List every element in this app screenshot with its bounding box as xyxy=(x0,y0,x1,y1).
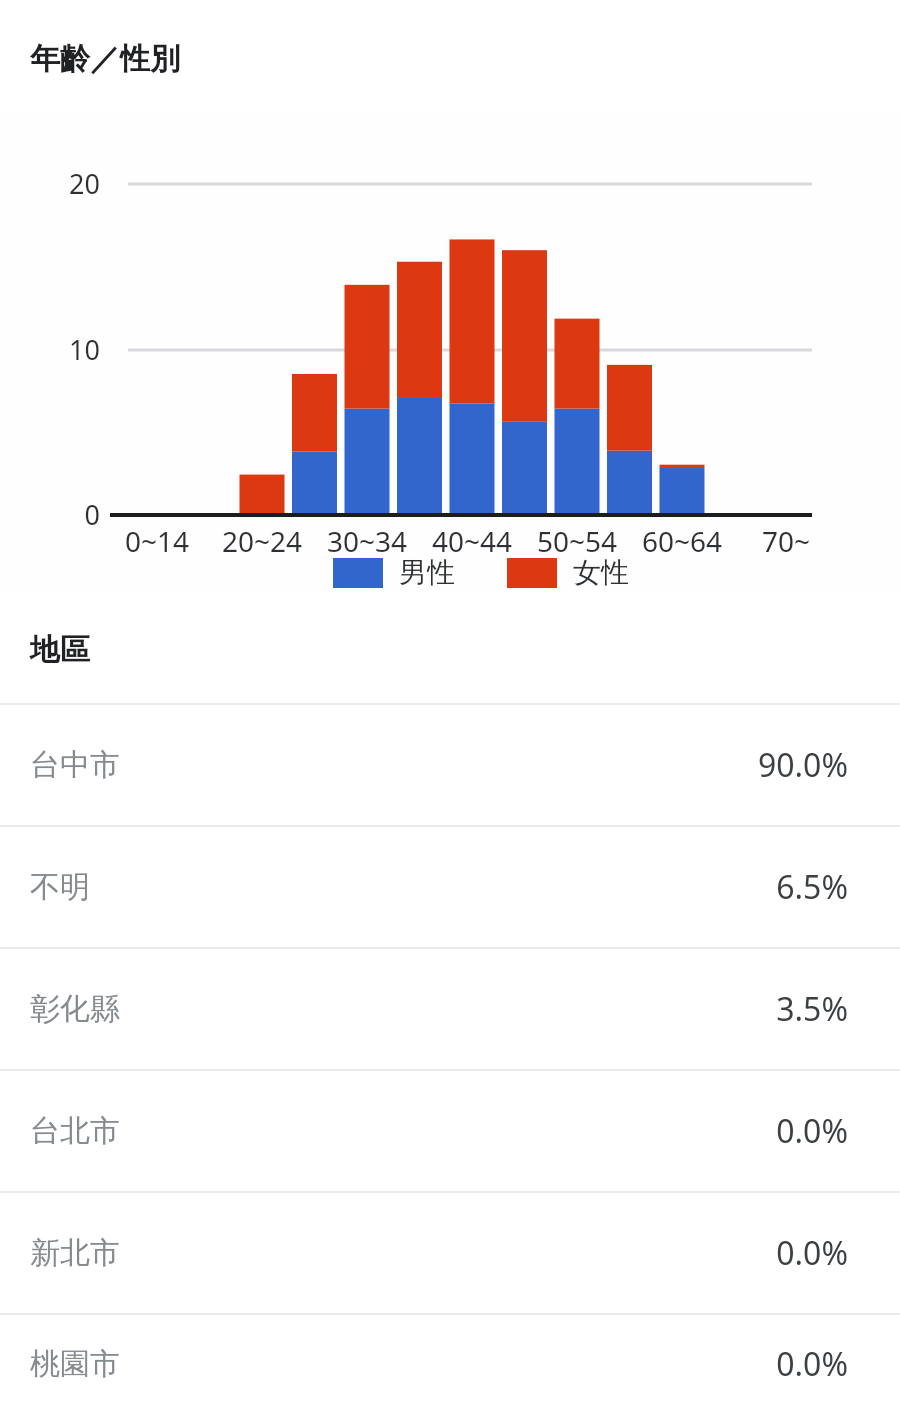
staticText: 男性 xyxy=(399,555,455,590)
button[interactable]: 新北市 xyxy=(0,1193,900,1313)
button[interactable]: 不明 xyxy=(0,827,900,947)
staticText: 桃園市 xyxy=(30,1345,120,1383)
staticText: 10 xyxy=(28,331,100,368)
staticText: 0.0% xyxy=(708,1342,848,1386)
staticText: 彰化縣 xyxy=(30,990,120,1028)
staticText: 3.5% xyxy=(708,987,848,1031)
staticText: 30~34 xyxy=(307,522,427,560)
staticText: 0.0% xyxy=(708,1231,848,1275)
button[interactable]: 台北市 xyxy=(0,1071,900,1191)
staticText: 地區 xyxy=(30,631,90,669)
staticText: 60~64 xyxy=(622,522,742,560)
staticText: 20 xyxy=(28,165,100,202)
staticText: 0.0% xyxy=(708,1109,848,1153)
staticText: 40~44 xyxy=(412,522,532,560)
staticText: 6.5% xyxy=(708,865,848,909)
staticText: 70~ xyxy=(726,522,846,560)
button[interactable]: 彰化縣 xyxy=(0,949,900,1069)
staticText: 20~24 xyxy=(202,522,322,560)
staticText: 台北市 xyxy=(30,1112,120,1150)
staticText: 50~54 xyxy=(517,522,637,560)
staticText: 0~14 xyxy=(97,522,217,560)
staticText: 台中市 xyxy=(30,746,120,784)
staticText: 年齡／性別 xyxy=(30,40,180,78)
staticText: 90.0% xyxy=(708,743,848,787)
staticText: 女性 xyxy=(573,555,629,590)
button[interactable]: 台中市 xyxy=(0,705,900,825)
staticText: 0 xyxy=(28,496,100,533)
button[interactable]: 桃園市 xyxy=(0,1315,900,1412)
staticText: 不明 xyxy=(30,868,90,906)
staticText: 新北市 xyxy=(30,1234,120,1272)
